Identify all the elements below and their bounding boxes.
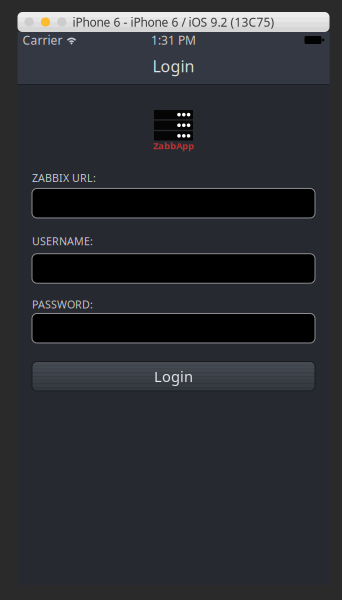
staticText: 1:31 PM — [151, 32, 196, 48]
staticText: Login — [152, 55, 194, 77]
staticText: ZABBIX URL: — [32, 171, 96, 185]
button[interactable] — [32, 254, 315, 283]
staticText: USERNAME: — [32, 234, 93, 248]
staticText: iPhone 6 - iPhone 6 / iOS 9.2 (13C75) — [72, 14, 274, 30]
staticText: ZabbApp — [153, 139, 194, 152]
staticText: PASSWORD: — [32, 297, 93, 311]
staticText: Carrier — [22, 32, 62, 48]
button[interactable] — [32, 313, 315, 343]
button[interactable] — [32, 188, 315, 218]
staticText: Login — [154, 366, 193, 386]
button[interactable]: Login — [32, 361, 315, 391]
